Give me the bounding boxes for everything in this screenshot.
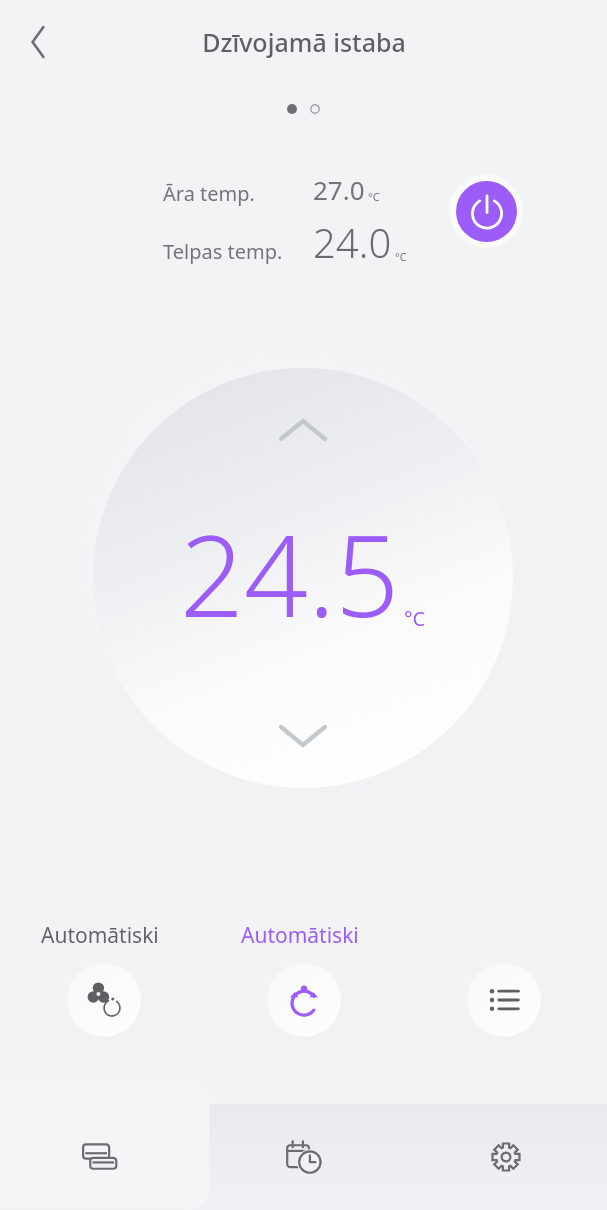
button[interactable]: Power xyxy=(456,181,517,242)
button[interactable]: Decrease temperature xyxy=(266,710,340,762)
staticText: Dzīvojamā istaba xyxy=(202,25,406,59)
button[interactable]: More options xyxy=(468,964,540,1036)
staticText: °C xyxy=(395,249,407,264)
button[interactable]: Settings xyxy=(405,1104,607,1210)
button[interactable]: Mode auto xyxy=(268,964,340,1036)
button[interactable]: Back xyxy=(10,14,66,70)
staticText: 27.0 xyxy=(313,172,365,207)
button[interactable]: Increase temperature xyxy=(93,368,513,788)
staticText: °C xyxy=(404,605,426,632)
button[interactable]: Fan speed auto xyxy=(68,964,140,1036)
button[interactable]: Increase temperature xyxy=(266,404,340,456)
staticText: Telpas temp. xyxy=(163,238,283,265)
button[interactable]: Schedule xyxy=(203,1104,405,1210)
staticText: 24.0 xyxy=(313,215,392,269)
staticText: Āra temp. xyxy=(163,180,255,207)
staticText: Automātiski xyxy=(41,921,159,950)
staticText: Automātiski xyxy=(241,921,359,950)
staticText: °C xyxy=(368,189,380,204)
staticText: 24.5 xyxy=(180,497,400,650)
button[interactable]: Device xyxy=(0,1104,203,1210)
